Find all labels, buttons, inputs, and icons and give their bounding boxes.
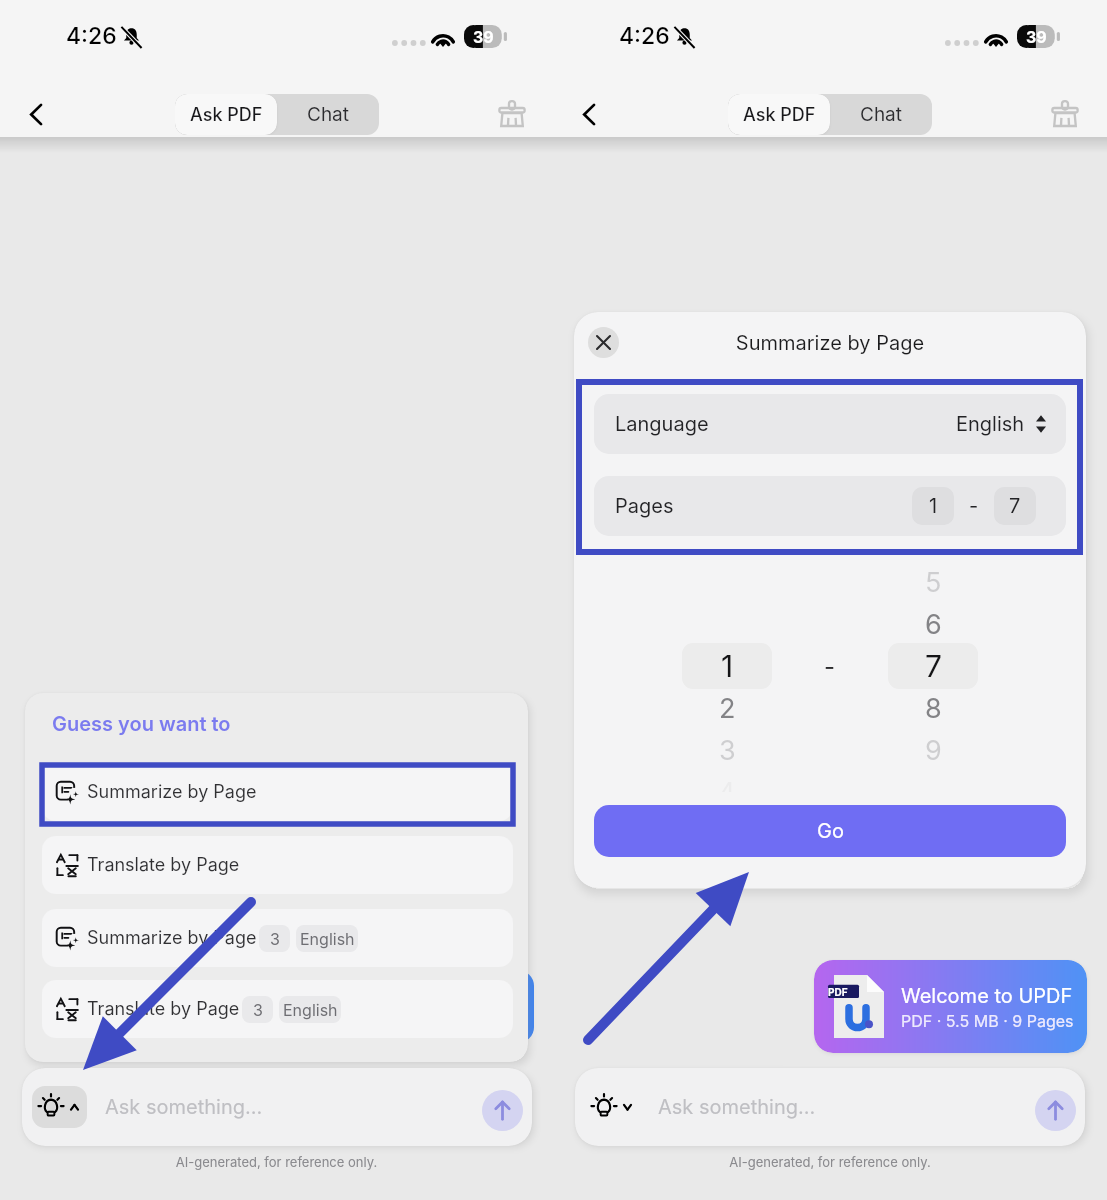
staticText: 6 — [925, 608, 942, 641]
staticText: Summarize by Page — [87, 927, 257, 949]
button[interactable]: Prompt tools — [585, 1086, 640, 1128]
staticText: English — [283, 1000, 338, 1019]
button[interactable]: Clear chat — [1043, 92, 1087, 136]
staticText: Guess you want to — [52, 712, 231, 736]
button[interactable]: PDF — [814, 960, 1087, 1053]
staticText: 3 — [719, 734, 736, 767]
button[interactable]: Pages — [594, 476, 1066, 536]
button[interactable]: 1 — [682, 643, 772, 689]
staticText: 3 — [253, 1000, 263, 1019]
button[interactable]: Prompt tools — [32, 1086, 87, 1128]
staticText: Ask PDF — [190, 104, 263, 126]
staticText: - — [969, 494, 979, 518]
button[interactable]: Close — [588, 327, 619, 358]
button[interactable]: Chat — [830, 94, 932, 135]
staticText: - — [824, 652, 836, 681]
button[interactable]: Send — [1035, 1090, 1076, 1131]
staticText: 8 — [925, 692, 942, 725]
staticText: Welcome to UPDF — [901, 984, 1073, 1008]
button[interactable]: Summarize by Page — [42, 763, 513, 821]
button[interactable]: Ask PDF — [175, 94, 277, 135]
button[interactable]: Ask PDF — [728, 94, 830, 135]
staticText: 7 — [1009, 494, 1021, 518]
staticText: 39 — [473, 27, 494, 46]
button[interactable]: Translate by Page — [42, 836, 513, 894]
staticText: Summarize by Page — [87, 781, 257, 803]
button[interactable]: Back — [14, 92, 58, 136]
staticText: Summarize by Page — [574, 331, 1086, 355]
button[interactable]: Summarize by Page — [42, 909, 513, 967]
staticText: 1 — [721, 648, 734, 684]
button[interactable]: Language — [594, 394, 1066, 454]
staticText: Ask something... — [105, 1095, 263, 1119]
button[interactable]: Chat — [277, 94, 379, 135]
staticText: 9 — [925, 734, 942, 767]
staticText: Chat — [860, 103, 902, 126]
staticText: 4:26 — [619, 22, 670, 50]
button[interactable]: Send — [482, 1090, 523, 1131]
button[interactable]: Back — [567, 92, 611, 136]
staticText: Language — [615, 412, 709, 436]
button[interactable]: Go — [594, 805, 1066, 857]
staticText: 4:26 — [66, 22, 117, 50]
staticText: 3 — [270, 929, 280, 948]
staticText: English — [956, 412, 1025, 436]
staticText: Translate by Page — [87, 854, 240, 876]
staticText: AI-generated, for reference only. — [0, 1154, 553, 1170]
staticText: 5 — [925, 566, 942, 599]
staticText: 7 — [925, 648, 942, 684]
staticText: PDF — [828, 986, 848, 998]
staticText: Pages — [615, 494, 674, 518]
staticText: Ask something... — [658, 1095, 816, 1119]
staticText: 1 — [929, 494, 938, 518]
staticText: AI-generated, for reference only. — [553, 1154, 1107, 1170]
button[interactable]: Clear chat — [490, 92, 534, 136]
staticText: Ask PDF — [743, 104, 816, 126]
staticText: 2 — [719, 692, 736, 725]
button[interactable]: Translate by Page — [42, 980, 513, 1038]
staticText: PDF · 5.5 MB · 9 Pages — [901, 1011, 1074, 1030]
staticText: Translate by Page — [87, 998, 240, 1020]
button[interactable]: 7 — [888, 643, 978, 689]
staticText: Chat — [307, 103, 349, 126]
staticText: English — [300, 929, 355, 948]
staticText: 39 — [1026, 27, 1047, 46]
staticText: Go — [817, 819, 844, 843]
